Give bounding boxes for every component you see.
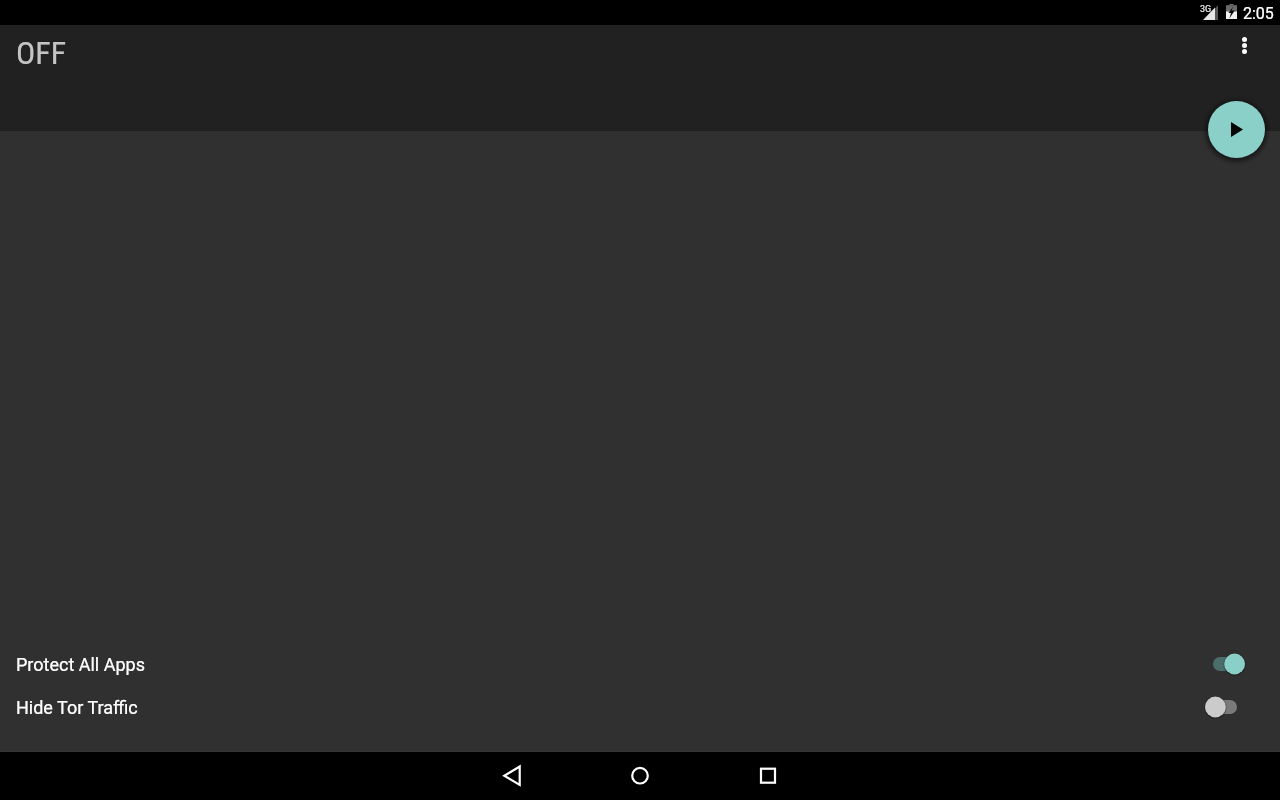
button[interactable]: Home bbox=[616, 752, 664, 800]
button[interactable]: Protect All Apps bbox=[1213, 653, 1245, 675]
button[interactable]: More options bbox=[1226, 27, 1262, 63]
button[interactable]: Protect All Apps bbox=[0, 643, 1280, 686]
staticText: Protect All Apps bbox=[16, 654, 145, 675]
staticText: Hide Tor Traffic bbox=[16, 697, 138, 718]
button[interactable]: Back bbox=[488, 752, 536, 800]
button[interactable]: Hide Tor Traffic bbox=[1205, 696, 1237, 718]
staticText: 3G bbox=[1200, 4, 1212, 15]
staticText: OFF bbox=[16, 34, 67, 72]
staticText: 2:05 bbox=[1243, 4, 1274, 23]
button[interactable]: Hide Tor Traffic bbox=[0, 686, 1280, 729]
button[interactable]: Start Tor bbox=[1208, 101, 1265, 158]
button[interactable]: Recent apps bbox=[744, 752, 792, 800]
